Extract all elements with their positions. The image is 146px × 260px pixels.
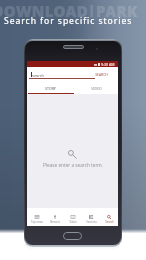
staticText: Search [105, 220, 114, 224]
button[interactable]: STORY [27, 82, 73, 94]
button[interactable] [28, 70, 98, 81]
staticText: DOWNLOAD|PARK [0, 1, 138, 17]
button[interactable]: SEARCH [97, 70, 117, 81]
staticText: Newest [50, 220, 60, 224]
button[interactable]: VIDEO [73, 82, 119, 94]
button[interactable]: Newest [46, 208, 64, 226]
staticText: Search for specific stories [4, 15, 133, 27]
staticText: Sections [86, 220, 97, 224]
button[interactable]: Top news [27, 208, 46, 226]
staticText: SEARCH [95, 72, 108, 76]
button[interactable]: Video [64, 208, 82, 226]
staticText: search [32, 73, 44, 78]
staticText: STORY [45, 86, 56, 91]
staticText: VIDEO [91, 86, 102, 91]
staticText: Top news [31, 220, 43, 224]
staticText: Video [69, 220, 77, 224]
button[interactable]: Search [100, 208, 118, 226]
staticText: Please enter a search term. [43, 162, 103, 168]
staticText: 9:30 AM [101, 62, 115, 67]
button[interactable]: Sections [82, 208, 100, 226]
